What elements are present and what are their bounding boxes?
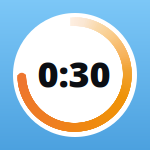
- staticText: 0:30: [37, 50, 110, 97]
